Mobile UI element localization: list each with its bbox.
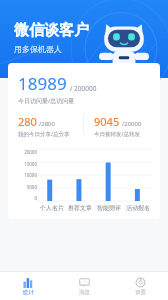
staticText: /20000 <box>122 120 142 128</box>
staticText: 收起 <box>134 124 148 133</box>
button[interactable]: 消息 <box>56 272 112 300</box>
staticText: 今日访问量/总访问量 <box>18 97 75 105</box>
button[interactable]: 统计 <box>0 272 56 300</box>
staticText: 9045 <box>94 114 120 129</box>
staticText: 用多保机器人 <box>14 44 62 54</box>
staticText: 微信谈客户 <box>14 21 89 40</box>
staticText: 消息 <box>79 289 90 296</box>
staticText: 活动报名 <box>126 204 150 212</box>
staticText: 统计 <box>23 289 34 296</box>
staticText: 我的今日分享/总分享 <box>18 130 70 138</box>
staticText: 设置 <box>135 289 146 296</box>
staticText: 10000 <box>24 172 37 178</box>
staticText: 15000 <box>24 161 37 167</box>
staticText: 页面访问柱状图 <box>10 122 80 135</box>
staticText: 个人名片 <box>40 204 64 212</box>
staticText: / 200000 <box>70 84 97 93</box>
staticText: 20000 <box>24 149 37 155</box>
staticText: /2800 <box>39 120 55 128</box>
staticText: 今日被转发/总转发 <box>94 130 141 138</box>
button[interactable]: 18989 <box>8 63 160 147</box>
staticText: 18989 <box>18 72 67 95</box>
staticText: 280 <box>18 114 37 129</box>
staticText: 推荐文章 <box>68 204 92 212</box>
button[interactable]: 设置 <box>112 272 168 300</box>
staticText: 0 <box>34 195 37 201</box>
staticText: 智能测评 <box>97 204 121 212</box>
staticText: 5000 <box>26 184 37 190</box>
button[interactable]: 收起 <box>132 122 158 135</box>
